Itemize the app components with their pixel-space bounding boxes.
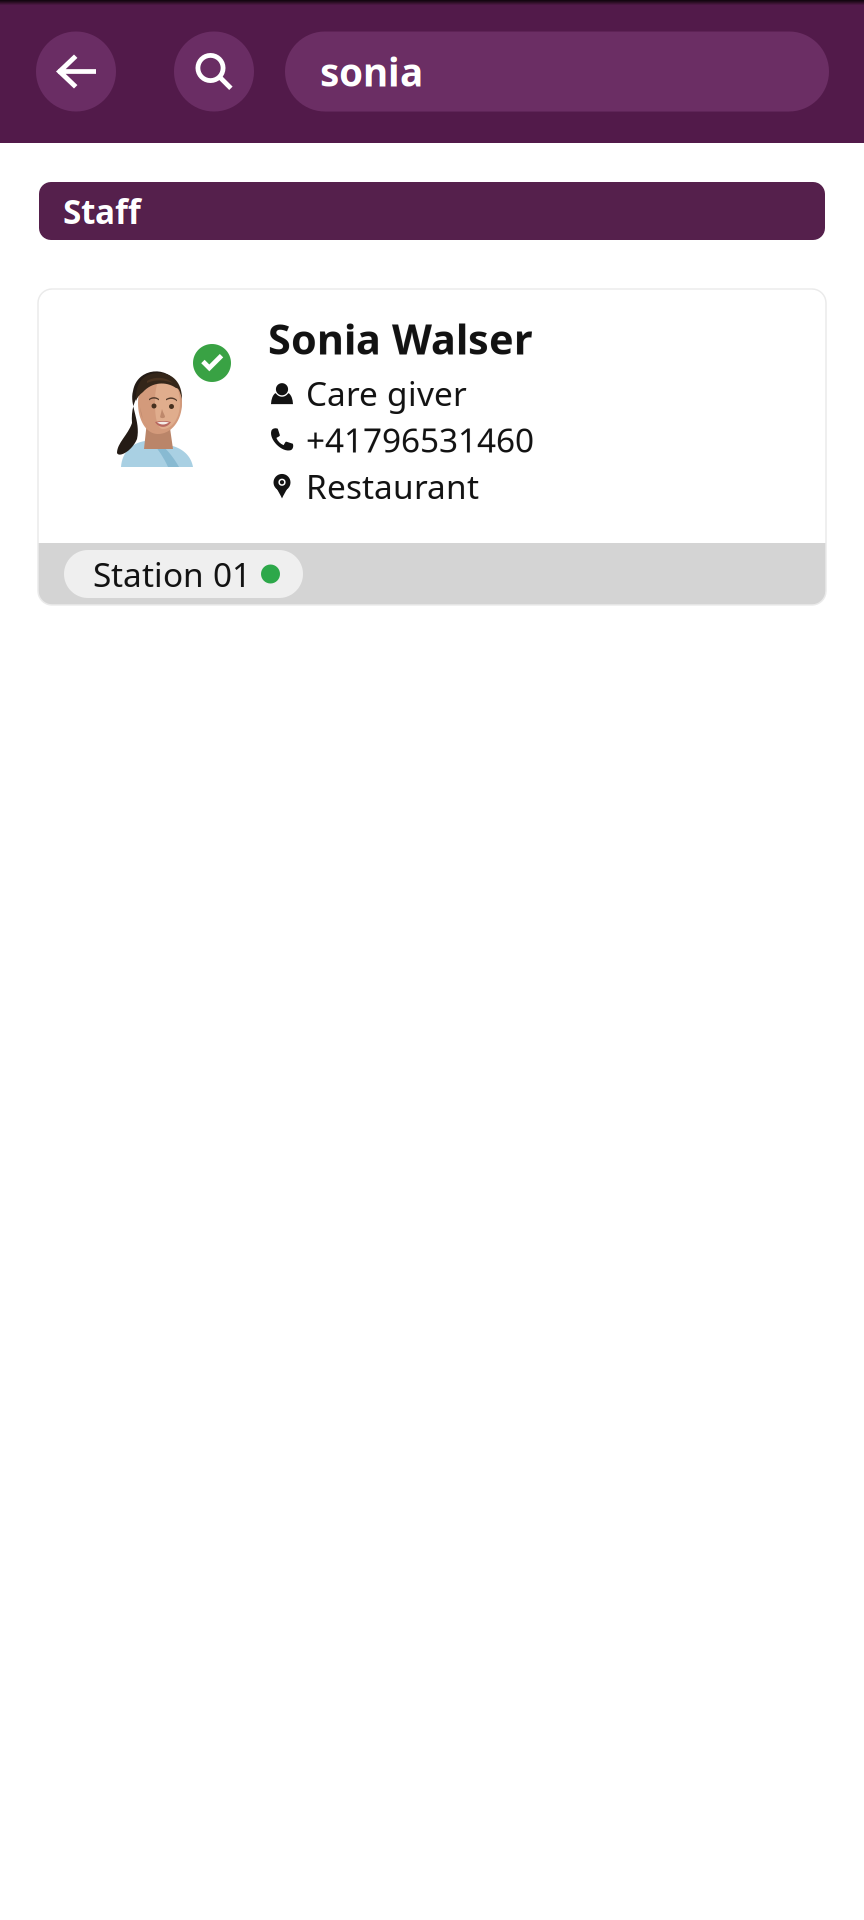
button[interactable]: sonia bbox=[285, 31, 829, 111]
staticText: +41796531460 bbox=[306, 417, 534, 462]
button[interactable]: Staff bbox=[39, 182, 825, 240]
staticText: Staff bbox=[63, 189, 141, 233]
button[interactable]: Sonia Walser bbox=[38, 289, 826, 605]
staticText: sonia bbox=[320, 46, 423, 97]
button[interactable]: Back bbox=[36, 31, 116, 111]
staticText: Care giver bbox=[306, 371, 467, 415]
staticText: Sonia Walser bbox=[268, 311, 532, 366]
staticText: Station 01 bbox=[93, 552, 251, 596]
staticText: Restaurant bbox=[306, 464, 479, 508]
button[interactable]: Search bbox=[174, 31, 254, 111]
